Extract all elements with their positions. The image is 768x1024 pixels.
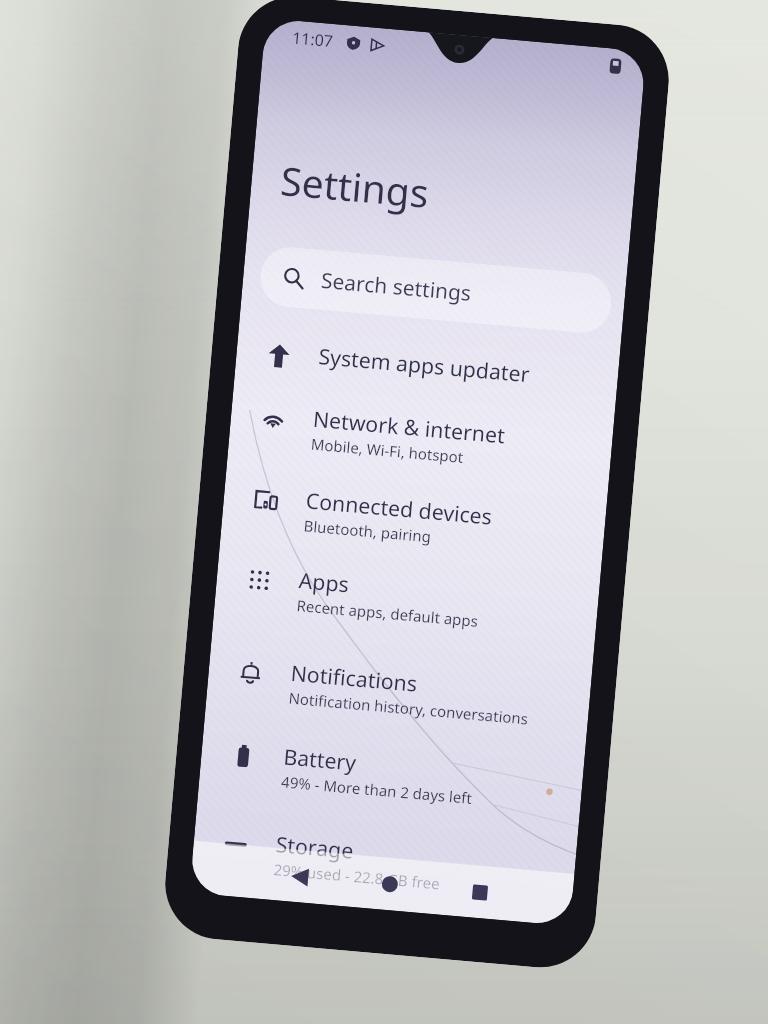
button[interactable]: System apps updater — [234, 317, 620, 412]
staticText: Notifications — [290, 658, 419, 698]
button[interactable]: Back — [271, 848, 329, 905]
button[interactable]: Network and internet — [227, 380, 615, 491]
staticText: Mobile, Wi-Fi, hotspot — [310, 434, 464, 467]
button[interactable]: Recent apps — [450, 864, 509, 920]
button[interactable]: Connected devices — [220, 461, 608, 572]
staticText: 29% used - 22.8 GB free — [273, 859, 441, 893]
other: Apps — [248, 569, 271, 592]
staticText: 49% - More than 2 days left — [280, 771, 473, 808]
other: Notifications — [239, 659, 263, 685]
staticText: Apps — [298, 565, 351, 598]
staticText: Connected devices — [305, 485, 494, 531]
button[interactable]: Apps — [213, 541, 601, 652]
staticText: System apps updater — [317, 341, 531, 388]
staticText: Recent apps, default apps — [296, 595, 479, 631]
staticText: Storage — [275, 829, 355, 865]
other: Battery — [235, 744, 251, 767]
staticText: Notification history, conversations — [288, 688, 530, 729]
other: System apps updater — [267, 344, 290, 368]
other: Connected devices — [253, 489, 280, 511]
staticText: Network & internet — [312, 404, 507, 449]
button[interactable]: Storage — [190, 805, 577, 916]
button[interactable]: Notifications — [205, 634, 592, 745]
button[interactable]: Home — [361, 856, 419, 912]
other: Network and internet — [260, 408, 287, 429]
other: Storage — [223, 834, 249, 855]
staticText: Search settings — [320, 266, 473, 308]
staticText: Bluetooth, pairing — [303, 515, 432, 546]
button[interactable]: Search settings — [258, 245, 614, 335]
staticText: Battery — [282, 741, 358, 777]
staticText: 11:07 — [291, 26, 334, 52]
button[interactable]: Battery — [198, 717, 585, 828]
staticText: Settings — [278, 153, 432, 219]
